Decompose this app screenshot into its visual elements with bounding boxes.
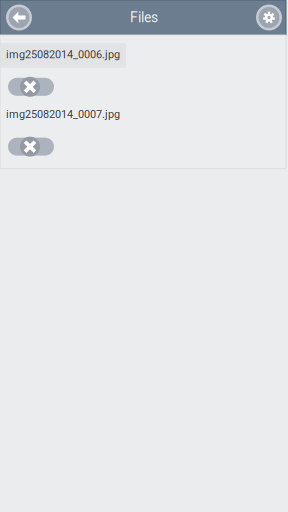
- button[interactable]: Delete file: [8, 77, 54, 97]
- staticText: img25082014_0006.jpg: [6, 48, 120, 61]
- button[interactable]: Delete file: [8, 137, 54, 157]
- button[interactable]: Back: [0, 0, 36, 34]
- staticText: Files: [130, 9, 158, 26]
- button[interactable]: Settings: [252, 0, 286, 34]
- staticText: img25082014_0007.jpg: [6, 108, 120, 121]
